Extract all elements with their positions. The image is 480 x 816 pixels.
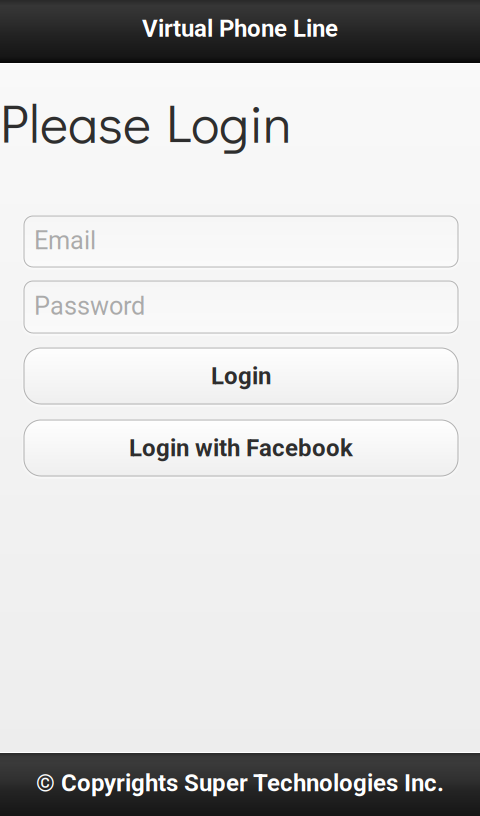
staticText: Email [34,226,96,255]
staticText: Login with Facebook [129,434,353,462]
button[interactable]: Login with Facebook [24,420,458,476]
button[interactable]: Login [24,348,458,404]
staticText: Login [211,362,271,390]
staticText: Password [34,291,145,321]
staticText: © Copyrights Super Technologies Inc. [36,769,444,797]
staticText: Login [166,87,292,157]
staticText: Virtual Phone Line [142,14,338,42]
staticText: Please [0,87,151,157]
